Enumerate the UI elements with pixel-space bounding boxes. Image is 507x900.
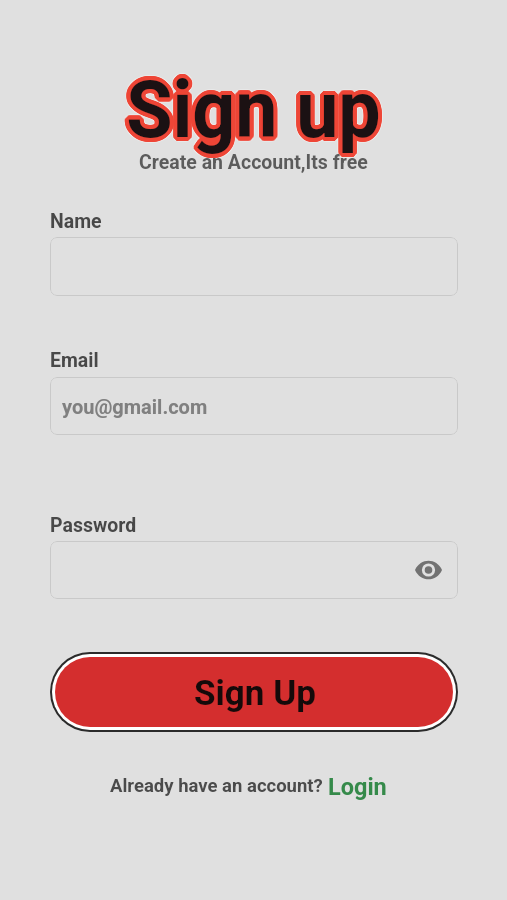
staticText: Sign up <box>124 59 379 153</box>
staticText: Sign up <box>131 62 385 156</box>
staticText: Sign up <box>126 66 381 160</box>
staticText: Sign up <box>127 61 382 155</box>
staticText: Sign up <box>130 60 385 154</box>
staticText: Sign up <box>127 62 382 156</box>
staticText: Sign up <box>130 62 385 156</box>
staticText: Create an Account,Its free <box>139 151 368 174</box>
staticText: Sign up <box>129 65 384 159</box>
staticText: Sign up <box>125 67 380 161</box>
staticText: Sign up <box>125 59 380 153</box>
staticText: Sign up <box>123 65 378 159</box>
staticText: Sign up <box>122 65 377 159</box>
button[interactable]: Show password <box>410 552 446 588</box>
staticText: Sign up <box>127 64 382 158</box>
staticText: Sign up <box>122 64 377 158</box>
staticText: Sign up <box>125 63 380 157</box>
staticText: Sign up <box>129 66 384 160</box>
staticText: Sign up <box>126 64 381 158</box>
staticText: Sign up <box>124 64 379 158</box>
staticText: Sign up <box>124 61 379 155</box>
staticText: Sign up <box>130 64 385 158</box>
staticText: Sign up <box>126 65 381 159</box>
staticText: Sign up <box>125 58 380 152</box>
button[interactable]: Login <box>328 773 387 801</box>
staticText: Sign up <box>124 60 379 154</box>
staticText: Sign up <box>122 66 377 160</box>
staticText: Sign up <box>126 59 381 153</box>
staticText: Sign up <box>130 62 385 156</box>
staticText: Sign up <box>128 59 383 153</box>
staticText: Sign up <box>123 61 378 155</box>
staticText: Sign up <box>128 67 383 161</box>
staticText: Sign up <box>121 64 376 158</box>
staticText: Sign up <box>130 66 385 160</box>
staticText: Sign up <box>124 65 379 159</box>
staticText: Sign up <box>125 62 380 156</box>
staticText: Sign up <box>124 66 379 160</box>
staticText: Sign up <box>123 63 378 157</box>
staticText: Sign up <box>125 65 380 159</box>
staticText: Sign up <box>126 68 381 162</box>
staticText: Sign up <box>124 62 379 156</box>
staticText: Sign up <box>127 59 382 153</box>
staticText: Sign up <box>128 63 383 157</box>
staticText: Sign up <box>122 62 377 156</box>
staticText: Sign up <box>125 61 380 155</box>
staticText: Sign up <box>126 59 381 153</box>
staticText: Sign up <box>122 60 377 154</box>
staticText: Sign up <box>128 62 383 156</box>
staticText: Sign up <box>123 59 378 153</box>
button[interactable]: Show password <box>50 541 458 599</box>
staticText: Sign up <box>129 61 384 155</box>
staticText: Sign up <box>128 65 383 159</box>
staticText: Sign up <box>122 61 377 155</box>
staticText: Sign up <box>123 66 378 160</box>
staticText: Sign up <box>127 65 382 159</box>
staticText: Sign up <box>130 63 385 157</box>
staticText: Email <box>50 349 99 372</box>
staticText: Sign up <box>122 64 377 158</box>
staticText: Sign up <box>130 65 385 159</box>
staticText: Sign up <box>129 63 384 157</box>
staticText: Sign up <box>122 63 377 157</box>
staticText: Sign up <box>129 67 384 161</box>
staticText: Sign up <box>129 59 384 153</box>
staticText: Sign up <box>128 66 383 160</box>
staticText: Sign up <box>126 63 381 157</box>
staticText: Login <box>328 773 387 801</box>
staticText: Sign up <box>127 68 382 162</box>
staticText: Sign up <box>130 64 385 158</box>
staticText: Sign up <box>126 60 381 154</box>
staticText: Sign up <box>128 64 383 158</box>
button[interactable] <box>50 237 458 296</box>
button[interactable]: Sign Up <box>50 652 458 732</box>
staticText: Sign up <box>128 60 383 154</box>
staticText: Sign up <box>125 59 380 153</box>
staticText: Sign up <box>126 62 381 156</box>
staticText: Sign up <box>129 60 384 154</box>
button[interactable]: you@gmail.com <box>50 377 458 435</box>
staticText: Sign up <box>131 64 385 158</box>
staticText: Sign up <box>125 64 380 158</box>
staticText: Sign up <box>127 67 382 161</box>
staticText: Sign up <box>127 67 382 161</box>
staticText: Sign up <box>125 66 380 160</box>
staticText: Sign up <box>121 63 376 157</box>
staticText: Sign up <box>123 64 378 158</box>
staticText: Sign up <box>126 67 381 161</box>
staticText: Sign up <box>126 61 381 155</box>
staticText: Name <box>50 210 102 233</box>
staticText: Sign up <box>129 62 384 156</box>
staticText: Sign up <box>131 63 385 157</box>
staticText: Sign up <box>126 67 381 161</box>
staticText: Sign Up <box>194 673 316 714</box>
staticText: Sign up <box>126 58 381 152</box>
staticText: Sign up <box>127 66 382 160</box>
staticText: Sign up <box>123 67 378 161</box>
staticText: Sign up <box>129 64 384 158</box>
staticText: Sign up <box>130 63 385 157</box>
staticText: Sign up <box>127 59 382 153</box>
staticText: Sign up <box>127 60 382 154</box>
staticText: Sign up <box>125 67 380 161</box>
staticText: Sign up <box>121 62 376 156</box>
